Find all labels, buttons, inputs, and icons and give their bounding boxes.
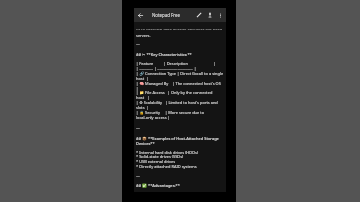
staticText: | Feature | Description | xyxy=(136,61,216,66)
staticText: servers. xyxy=(136,33,151,38)
staticText: local-only access | xyxy=(136,115,170,120)
staticText: * Internal hard disk drives (HDDs) xyxy=(136,150,199,155)
staticText: ## ✂️ **Key Characteristics:** xyxy=(136,52,192,57)
staticText: * Directly attached RAID systems xyxy=(136,164,197,169)
staticText: | 🔗 Connection Type | Direct (local) to … xyxy=(136,71,224,76)
staticText: — xyxy=(136,125,140,130)
staticText: — xyxy=(136,41,140,46)
staticText: * Solid-state drives (SSDs) xyxy=(136,154,184,159)
staticText: us to personal data queries and does not… xyxy=(136,29,223,30)
staticText: Notepad Free xyxy=(152,12,181,18)
staticText: Devices** xyxy=(136,141,155,146)
button[interactable]: Back xyxy=(134,8,147,22)
staticText: | ⚙️ Scalability | Limited to host's por… xyxy=(136,100,218,105)
staticText: host | xyxy=(136,95,150,100)
staticText: ## ✅ **Advantages:** xyxy=(136,183,180,188)
staticText: | xyxy=(136,86,139,91)
staticText: slots | xyxy=(136,105,149,110)
button[interactable]: More options xyxy=(215,8,226,22)
button[interactable]: Edit xyxy=(193,8,204,22)
staticText: ## 📦 **Examples of Host-Attached Storage xyxy=(136,136,219,141)
button[interactable]: Voice input xyxy=(204,8,215,22)
staticText: host | xyxy=(136,76,149,81)
staticText: — xyxy=(136,173,140,178)
staticText: | 🧠 Managed By | The connected host's OS xyxy=(136,81,221,86)
staticText: * USB external drives xyxy=(136,159,176,164)
staticText: | ----------- | ------------------------… xyxy=(136,66,197,71)
staticText: | 🔒 Security | More secure due to xyxy=(136,110,205,115)
staticText: | 📁 File Access | Only by the connected xyxy=(136,90,213,95)
